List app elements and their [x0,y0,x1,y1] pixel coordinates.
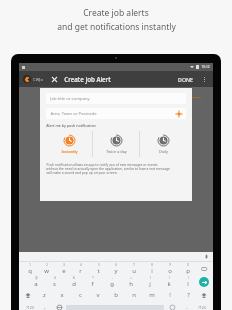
staticText: f [91,280,94,288]
staticText: r [79,267,82,275]
staticText: l [187,280,189,288]
staticText: n [132,291,136,299]
button[interactable]: 8 [143,262,161,275]
staticText: k [167,280,171,288]
staticText: 4 [80,263,82,267]
staticText: ? [187,291,190,299]
button[interactable]: v [89,288,107,301]
staticText: ?123 [26,305,34,310]
staticText: CWJo [33,77,43,82]
button[interactable]: Twice a day [93,131,139,157]
staticText: 10:12 [201,65,210,69]
staticText: - [112,276,113,280]
staticText: t [97,267,100,275]
staticText: @ [35,276,38,280]
staticText: Area, Town or Postcode [50,111,97,117]
staticText: w [44,267,49,275]
button[interactable]: 2 [38,262,55,275]
staticText: 1 [29,263,31,267]
staticText: & [73,276,75,280]
button[interactable]: 7 [125,262,143,275]
button[interactable]: b [107,288,125,301]
staticText: will make a sound and pop up on your scr… [46,170,118,174]
button[interactable]: 4 [72,262,89,275]
button[interactable]: , [38,301,52,310]
button[interactable]: # [45,275,64,288]
button[interactable]: Daily [140,131,186,157]
button[interactable]: - [102,275,121,288]
staticText: o [168,267,172,275]
staticText: # [54,276,56,280]
button[interactable]: 6 [107,262,125,275]
button[interactable]: ? [179,288,197,301]
button[interactable]: More options [200,75,209,84]
button[interactable]: c [71,288,89,301]
staticText: 2 [46,263,48,267]
staticText: j [149,280,151,288]
button[interactable]: Shift [197,288,211,301]
staticText: , [44,304,46,310]
staticText: u [132,267,136,275]
button[interactable]: ?123 [194,301,210,310]
staticText: and get notifications instantly [57,21,176,33]
button[interactable]: ) [159,275,178,288]
button[interactable]: n [125,288,143,301]
staticText: 0 [187,263,189,267]
button[interactable]: Instantly [46,131,92,157]
staticText: without the need to actually open the ap… [46,166,170,170]
staticText: ) [169,276,170,280]
button[interactable]: 9 [161,262,179,275]
button[interactable]: DONE [176,74,195,85]
button[interactable]: 1 [21,262,38,275]
staticText: p [186,267,190,275]
button[interactable]: x [53,288,71,301]
button[interactable]: ( [140,275,159,288]
staticText: 6 [115,263,117,267]
button[interactable]: Job title or company [46,93,186,104]
staticText: z [43,291,46,299]
button[interactable]: Close [50,75,59,84]
other: Use my location [176,111,182,117]
button[interactable]: + [121,275,140,288]
button[interactable]: Backspace [197,262,211,275]
staticText: / [188,276,189,280]
staticText: d [72,280,76,288]
button[interactable]: Shift [21,288,35,301]
staticText: Alert me by push notification [46,123,96,128]
staticText: ALERTS [175,89,190,95]
staticText: i [151,267,153,275]
staticText: ( [150,276,151,280]
staticText: 7 [133,263,135,267]
staticText: * [92,276,94,280]
button[interactable]: z [35,288,53,301]
button[interactable]: m [143,288,161,301]
button[interactable]: Enter [197,275,211,288]
staticText: m [149,291,155,299]
staticText: b [114,291,118,299]
button[interactable]: / [178,275,197,288]
button[interactable]: Change language [52,301,66,310]
staticText: 9 [169,263,171,267]
staticText: ?123 [198,305,206,310]
button[interactable]: Area, Town or Postcode [46,108,186,119]
button[interactable]: ?123 [22,301,38,310]
button[interactable]: * [83,275,102,288]
button[interactable]: ! [161,288,179,301]
button[interactable]: 5 [89,262,107,275]
staticText: s [53,280,56,288]
staticText: Create job alerts [83,7,149,19]
staticText: . [186,304,188,310]
staticText: 5 [98,263,100,267]
button[interactable]: & [64,275,83,288]
button[interactable]: Emoji [164,301,180,310]
staticText: Push notification allows an app to notif… [46,162,158,166]
button[interactable]: @ [26,275,45,288]
staticText: y [114,267,118,275]
staticText: Create Job Alert [64,75,111,83]
button[interactable]: 0 [179,262,197,275]
staticText: Twice a day [106,149,127,154]
button[interactable]: 3 [55,262,72,275]
staticText: + [130,276,132,280]
